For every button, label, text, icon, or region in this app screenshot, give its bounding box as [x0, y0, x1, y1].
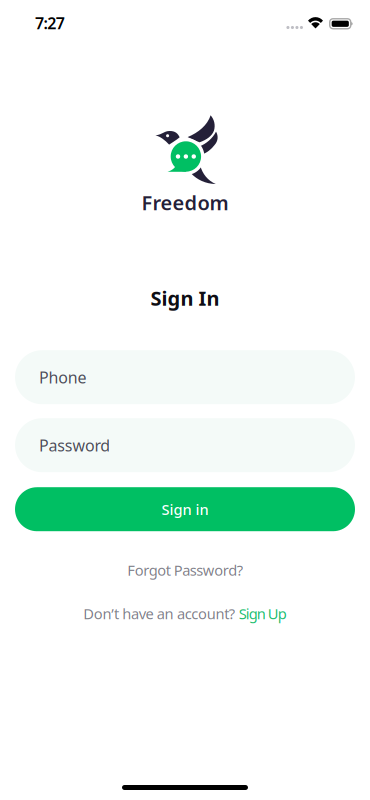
- button[interactable]: Sign Up: [239, 604, 287, 623]
- staticText: Sign In: [150, 285, 219, 311]
- staticText: 7:27: [35, 12, 65, 34]
- staticText: Forgot Password?: [127, 560, 243, 580]
- button[interactable]: Password: [15, 418, 355, 472]
- button[interactable]: Phone: [15, 350, 355, 404]
- button[interactable]: Forgot Password?: [127, 560, 243, 580]
- staticText: Phone: [39, 367, 86, 388]
- staticText: Don’t have an account?: [83, 604, 235, 623]
- staticText: Sign Up: [239, 604, 287, 623]
- staticText: Password: [39, 435, 110, 456]
- button[interactable]: Sign in: [15, 487, 355, 531]
- staticText: Freedom: [141, 189, 228, 216]
- staticText: Sign in: [161, 499, 208, 519]
